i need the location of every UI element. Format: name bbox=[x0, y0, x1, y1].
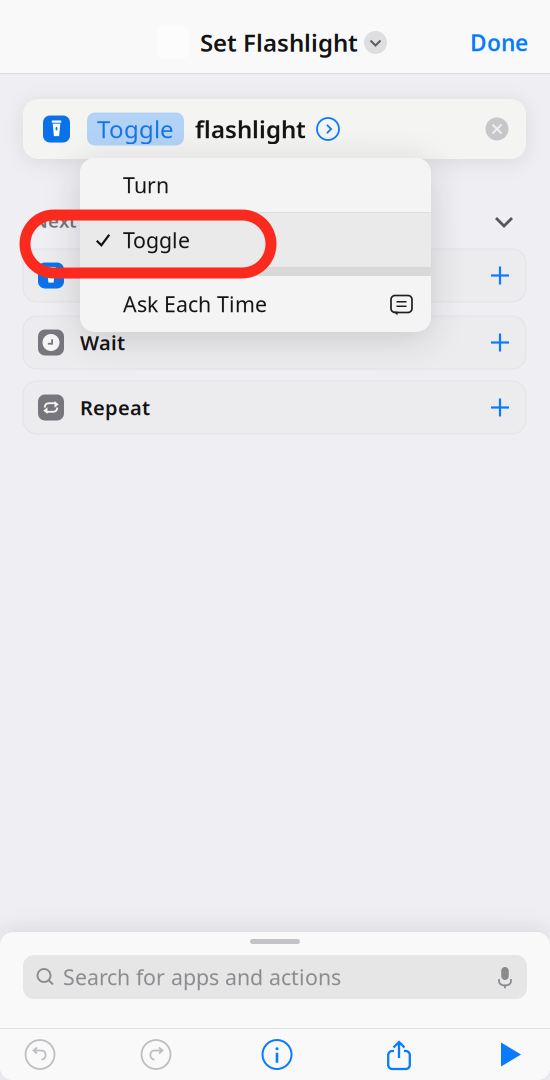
staticText: flashlight bbox=[195, 113, 306, 145]
button[interactable]: Shortcut settings bbox=[358, 25, 393, 60]
button[interactable]: Turn bbox=[80, 158, 431, 212]
button[interactable]: Shortcut details bbox=[249, 1029, 305, 1080]
button[interactable]: Collapse suggestions bbox=[484, 205, 524, 239]
button[interactable]: Remove action bbox=[480, 112, 514, 146]
staticText: Done bbox=[470, 27, 528, 57]
staticText: Wait bbox=[80, 329, 125, 356]
staticText: Ask Each Time bbox=[123, 290, 267, 318]
staticText: Turn bbox=[123, 171, 169, 199]
button[interactable]: Done bbox=[448, 15, 550, 69]
staticText: Toggle bbox=[97, 113, 174, 145]
button[interactable]: Repeat bbox=[23, 381, 526, 434]
button[interactable]: Undo bbox=[12, 1029, 68, 1080]
staticText: Next Suggested Actions bbox=[33, 208, 252, 233]
staticText: Turn flashlight on bbox=[80, 262, 254, 289]
staticText: Toggle bbox=[123, 226, 190, 254]
button[interactable]: Ask Each Time bbox=[80, 277, 431, 331]
button[interactable]: Share bbox=[371, 1029, 427, 1080]
button[interactable]: Wait bbox=[23, 316, 526, 369]
staticText: Set Flashlight bbox=[200, 27, 358, 58]
button[interactable]: Turn flashlight on bbox=[23, 249, 526, 302]
button[interactable]: Redo bbox=[128, 1029, 184, 1080]
button[interactable]: Toggle bbox=[80, 213, 431, 267]
button[interactable]: Run shortcut bbox=[483, 1029, 539, 1080]
staticText: Repeat bbox=[80, 394, 150, 421]
staticText: Search for apps and actions bbox=[63, 963, 341, 991]
